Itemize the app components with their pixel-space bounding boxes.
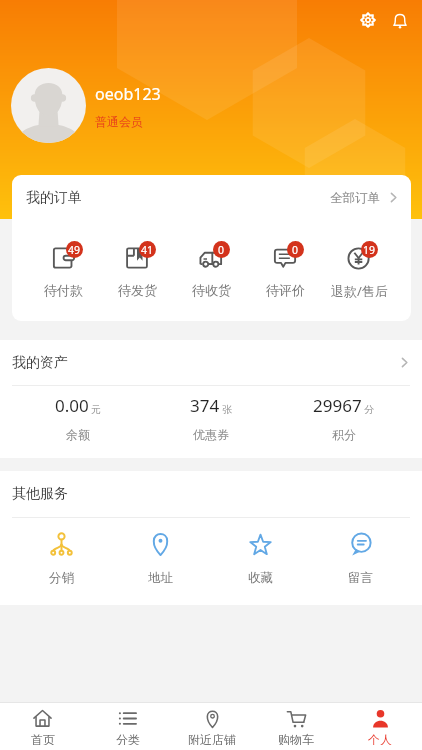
button[interactable]: 留言 [310, 518, 410, 586]
staticText: 余额 [66, 427, 90, 442]
staticText: 优惠券 [193, 427, 229, 442]
staticText: 我的资产 [12, 354, 68, 372]
staticText: 我的订单 [26, 189, 82, 207]
button[interactable]: 49 [27, 241, 100, 298]
staticText: 分销 [49, 570, 74, 586]
button[interactable]: Settings [352, 4, 384, 36]
staticText: 分类 [116, 732, 140, 745]
staticText: 张 [222, 403, 232, 416]
staticText: 普通会员 [95, 114, 143, 129]
button[interactable]: 374 [144, 386, 277, 442]
button[interactable]: 19 [322, 241, 396, 300]
staticText: 分 [364, 403, 374, 416]
staticText: 元 [91, 403, 101, 416]
button[interactable]: oeob123 [11, 68, 161, 143]
button[interactable]: 收藏 [210, 518, 310, 586]
staticText: 待收货 [192, 282, 231, 298]
button[interactable]: 地址 [111, 518, 210, 586]
staticText: 374 [190, 394, 220, 417]
staticText: 首页 [31, 732, 55, 745]
button[interactable]: 0.00 [12, 386, 144, 442]
staticText: 收藏 [248, 570, 273, 586]
button[interactable]: 我的订单 [12, 175, 411, 220]
button[interactable]: 我的资产 [0, 340, 422, 385]
staticText: 附近店铺 [188, 732, 236, 745]
staticText: 退款/售后 [331, 282, 388, 300]
button[interactable]: 个人 [338, 703, 422, 750]
staticText: 19 [363, 243, 376, 257]
staticText: oeob123 [95, 83, 161, 105]
button[interactable]: 0 [248, 241, 322, 298]
staticText: 41 [141, 243, 154, 257]
button[interactable]: 购物车 [254, 703, 338, 750]
staticText: 个人 [368, 732, 392, 745]
staticText: 购物车 [278, 732, 314, 745]
button[interactable]: 分销 [12, 518, 111, 586]
staticText: 留言 [348, 570, 373, 586]
staticText: 待评价 [266, 282, 305, 298]
staticText: 0 [292, 243, 299, 257]
staticText: 待付款 [44, 282, 83, 298]
staticText: 其他服务 [12, 485, 68, 503]
staticText: 积分 [332, 427, 356, 442]
button[interactable]: 分类 [85, 703, 170, 750]
staticText: 0.00 [55, 394, 89, 417]
staticText: 49 [68, 243, 81, 257]
button[interactable]: Notifications [384, 4, 416, 36]
staticText: 全部订单 [330, 190, 380, 206]
button[interactable]: 29967 [277, 386, 410, 442]
button[interactable]: 首页 [0, 703, 85, 750]
button[interactable]: 41 [100, 241, 174, 298]
button[interactable]: 附近店铺 [170, 703, 254, 750]
staticText: 待发货 [118, 282, 157, 298]
staticText: 0 [218, 243, 225, 257]
button[interactable]: 0 [174, 241, 248, 298]
staticText: 29967 [313, 394, 362, 417]
staticText: 地址 [148, 570, 173, 586]
